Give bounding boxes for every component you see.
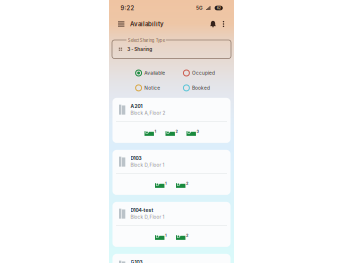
staticText: 2 [175,129,177,134]
button[interactable]: A201 [112,98,230,143]
staticText: Notice [144,85,160,91]
button[interactable]: D104-test [112,202,230,247]
button[interactable]: G103 [112,254,230,263]
button[interactable]: 3 - Sharing [112,40,231,58]
staticText: D103 [130,155,141,161]
staticText: 62 [217,6,221,10]
staticText: Availability [130,20,164,28]
staticText: G103 [130,259,142,263]
staticText: Occupied [192,70,215,76]
staticText: 3 - Sharing [127,46,152,52]
button[interactable]: D103 [112,150,230,195]
staticText: Select Sharing Type [128,38,165,43]
button[interactable]: Available [135,68,183,77]
button[interactable]: More options [218,16,228,31]
staticText: D104-test [130,207,153,213]
staticText: 1 [154,129,156,134]
button[interactable]: Notice [135,83,183,92]
staticText: 1 [165,233,167,238]
staticText: 1 [165,181,167,186]
staticText: 2 [186,233,188,238]
staticText: Block D, Floor 1 [130,214,164,220]
button[interactable]: Booked [183,83,231,92]
staticText: Booked [192,85,210,91]
staticText: Block A, Floor 2 [130,110,165,116]
staticText: 3 [196,129,198,134]
staticText: Block D, Floor 1 [130,162,164,168]
button[interactable]: Occupied [183,68,231,77]
button[interactable]: Menu [116,16,127,31]
staticText: Available [144,70,165,76]
staticText: 2 [186,181,188,186]
staticText: 5G [196,5,203,11]
staticText: A201 [130,103,142,109]
staticText: 9:22 [120,4,134,12]
button[interactable]: Notifications [207,16,218,31]
button[interactable]: Availability [127,16,164,31]
